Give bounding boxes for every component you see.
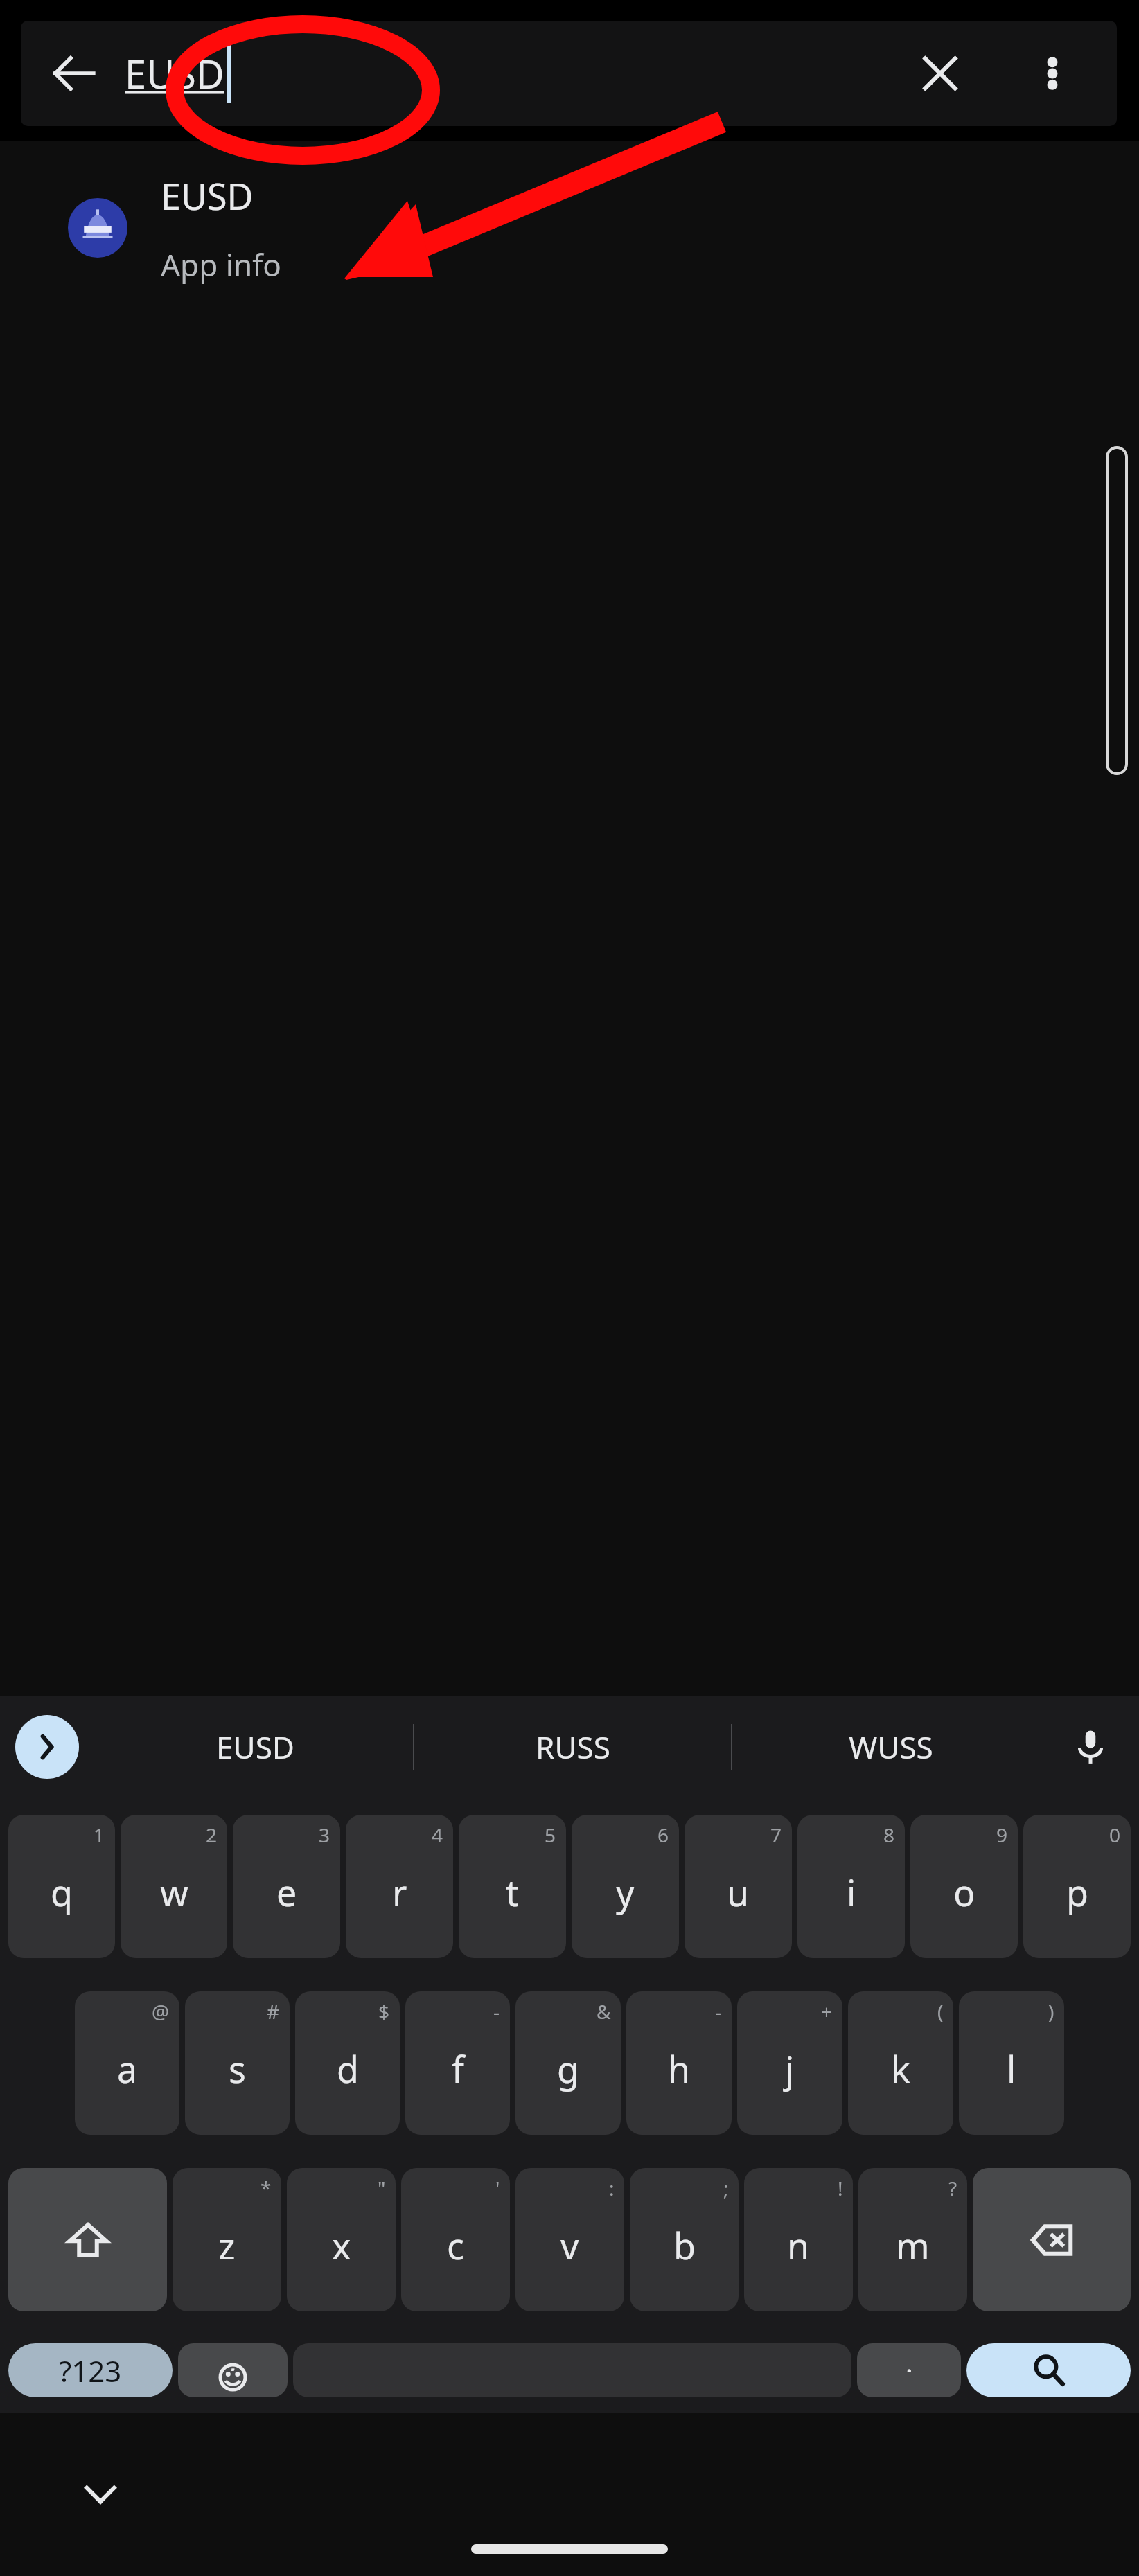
button[interactable]: Voice input — [1056, 1712, 1125, 1782]
button[interactable]: 0 — [1023, 1815, 1131, 1958]
staticText: ; — [723, 2175, 729, 2201]
button[interactable]: EUSD — [125, 32, 231, 115]
staticText: p — [1066, 1867, 1088, 1917]
button[interactable]: * — [173, 2168, 281, 2311]
button[interactable]: Hide keyboard — [62, 2456, 139, 2532]
staticText: 6 — [657, 1822, 669, 1848]
staticText: EUSD — [125, 47, 224, 100]
button[interactable]: & — [515, 1991, 621, 2135]
staticText: : — [609, 2175, 615, 2201]
staticText: i — [847, 1867, 856, 1917]
staticText: $ — [378, 1998, 390, 2025]
staticText: 5 — [545, 1822, 556, 1848]
staticText: + — [821, 1998, 833, 2025]
staticText: EUSD — [216, 1726, 294, 1768]
staticText: . — [906, 2343, 913, 2372]
button[interactable]: Backspace — [973, 2168, 1131, 2311]
button[interactable]: Shift — [8, 2168, 167, 2311]
button[interactable]: - — [626, 1991, 732, 2135]
staticText: 9 — [996, 1822, 1008, 1848]
staticText: w — [160, 1867, 188, 1917]
staticText: r — [392, 1867, 407, 1917]
staticText: 0 — [1109, 1822, 1121, 1848]
button[interactable]: Clear query — [902, 35, 978, 112]
staticText: t — [506, 1867, 519, 1917]
button[interactable]: 8 — [797, 1815, 905, 1958]
staticText: ?123 — [59, 2351, 122, 2390]
button[interactable]: - — [405, 1991, 510, 2135]
button[interactable]: ( — [848, 1991, 953, 2135]
staticText: # — [267, 1998, 280, 2025]
staticText: ! — [838, 2175, 843, 2201]
staticText: ' — [495, 2175, 500, 2201]
staticText: 3 — [319, 1822, 330, 1848]
button[interactable]: " — [287, 2168, 396, 2311]
button[interactable]: 1 — [8, 1815, 115, 1958]
staticText: EUSD — [161, 171, 254, 220]
staticText: j — [785, 2044, 795, 2093]
button[interactable]: . — [857, 2343, 961, 2397]
button[interactable]: 4 — [346, 1815, 453, 1958]
staticText: c — [447, 2221, 464, 2270]
button[interactable]: + — [737, 1991, 842, 2135]
button[interactable]: 5 — [459, 1815, 566, 1958]
button[interactable]: ; — [630, 2168, 739, 2311]
button[interactable]: RUSS — [414, 1696, 731, 1798]
staticText: RUSS — [536, 1726, 610, 1768]
staticText: d — [337, 2044, 359, 2093]
button[interactable]: 2 — [121, 1815, 227, 1958]
staticText: 7 — [770, 1822, 782, 1848]
staticText: y — [616, 1867, 635, 1917]
button[interactable]: 3 — [233, 1815, 340, 1958]
staticText: 8 — [883, 1822, 895, 1848]
button[interactable]: 6 — [572, 1815, 679, 1958]
staticText: e — [276, 1867, 297, 1917]
button[interactable]: ?123 — [8, 2343, 173, 2397]
staticText: - — [493, 1998, 500, 2025]
staticText: " — [378, 2175, 386, 2201]
staticText: ) — [1048, 1998, 1054, 2025]
staticText: 1 — [94, 1822, 105, 1848]
staticText: v — [560, 2221, 579, 2270]
staticText: s — [229, 2044, 246, 2093]
staticText: 4 — [432, 1822, 443, 1848]
button[interactable]: WUSS — [732, 1696, 1049, 1798]
staticText: 2 — [206, 1822, 218, 1848]
button[interactable]: EUSD — [97, 1696, 413, 1798]
button[interactable]: ) — [959, 1991, 1064, 2135]
staticText: m — [896, 2221, 930, 2270]
staticText: App info — [161, 244, 281, 285]
button[interactable]: EUSD — [0, 141, 1139, 314]
button[interactable]: Emoji — [178, 2343, 288, 2397]
button[interactable]: # — [185, 1991, 290, 2135]
button[interactable]: ? — [858, 2168, 967, 2311]
button[interactable]: ' — [401, 2168, 510, 2311]
staticText: g — [557, 2044, 579, 2093]
staticText: & — [597, 1998, 611, 2025]
staticText: WUSS — [849, 1726, 933, 1768]
staticText: u — [727, 1867, 750, 1917]
button[interactable]: Search — [966, 2343, 1131, 2397]
staticText: ? — [948, 2175, 957, 2201]
staticText: n — [787, 2221, 810, 2270]
staticText: , — [229, 2343, 237, 2371]
staticText: - — [715, 1998, 722, 2025]
button[interactable]: Back — [33, 33, 115, 114]
staticText: q — [51, 1867, 73, 1917]
staticText: x — [332, 2221, 351, 2270]
staticText: f — [452, 2044, 464, 2093]
button[interactable]: More options — [1014, 35, 1091, 112]
staticText: * — [261, 2175, 272, 2201]
button[interactable]: Space — [293, 2343, 851, 2397]
staticText: b — [673, 2221, 696, 2270]
button[interactable]: @ — [75, 1991, 179, 2135]
staticText: ( — [937, 1998, 944, 2025]
staticText: l — [1007, 2044, 1016, 2093]
button[interactable]: Expand suggestions — [15, 1715, 79, 1779]
button[interactable]: 7 — [685, 1815, 792, 1958]
button[interactable]: $ — [295, 1991, 400, 2135]
button[interactable]: : — [515, 2168, 624, 2311]
button[interactable]: ! — [744, 2168, 853, 2311]
staticText: h — [668, 2044, 691, 2093]
button[interactable]: 9 — [910, 1815, 1018, 1958]
